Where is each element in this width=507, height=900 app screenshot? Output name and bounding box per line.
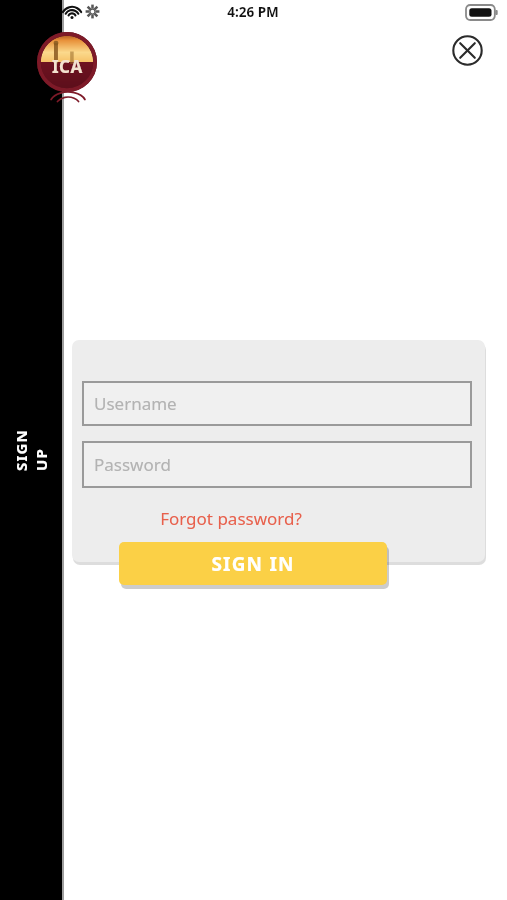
button[interactable]: Username [82,381,472,426]
staticText: Password [94,453,171,476]
staticText: Username [94,392,177,415]
button[interactable]: Password [82,441,472,488]
button[interactable]: ICA logo [37,32,97,92]
staticText: ICA [52,55,83,78]
staticText: Forgot password? [160,507,302,530]
staticText: SIGN IN [211,551,295,577]
button[interactable]: SIGN IN [119,542,387,585]
staticText: 4:26 PM [227,3,279,21]
staticText: SIGN UP [11,409,51,471]
button[interactable]: Close [452,35,483,66]
button[interactable]: SIGN UP [0,0,62,900]
button[interactable]: Forgot password? [140,504,322,532]
